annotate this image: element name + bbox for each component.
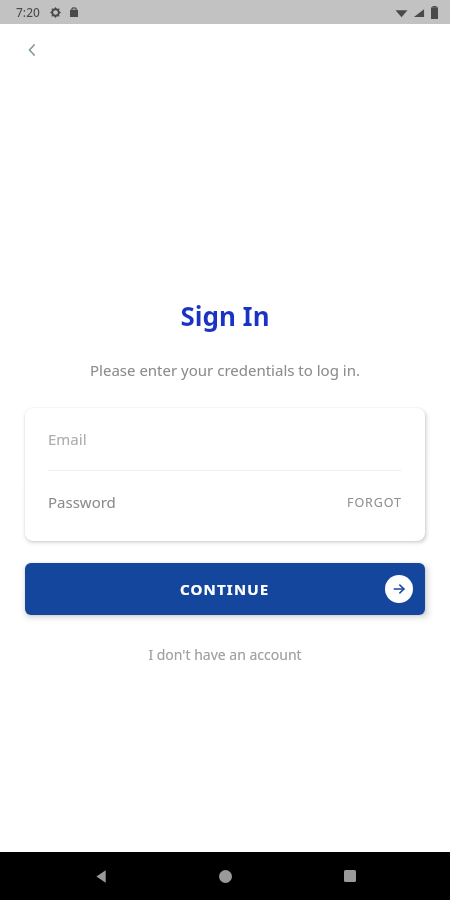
staticText: Email xyxy=(48,429,87,449)
staticText: 7:20 xyxy=(16,4,40,20)
staticText: CONTINUE xyxy=(180,579,270,599)
button[interactable]: Home xyxy=(201,852,249,900)
staticText: Sign In xyxy=(0,298,450,333)
button[interactable]: FORGOT xyxy=(347,494,402,511)
button[interactable]: CONTINUE xyxy=(25,563,425,615)
staticText: Password xyxy=(48,492,116,512)
staticText: I don't have an account xyxy=(148,645,302,664)
staticText: FORGOT xyxy=(347,494,402,511)
button[interactable]: Recent apps xyxy=(326,852,374,900)
staticText: Please enter your credentials to log in. xyxy=(0,360,450,380)
button[interactable]: I don't have an account xyxy=(140,643,310,666)
button[interactable]: Email xyxy=(25,408,425,470)
button[interactable]: Password xyxy=(25,471,425,533)
button[interactable]: Back xyxy=(77,852,125,900)
button[interactable]: Back xyxy=(12,30,52,70)
